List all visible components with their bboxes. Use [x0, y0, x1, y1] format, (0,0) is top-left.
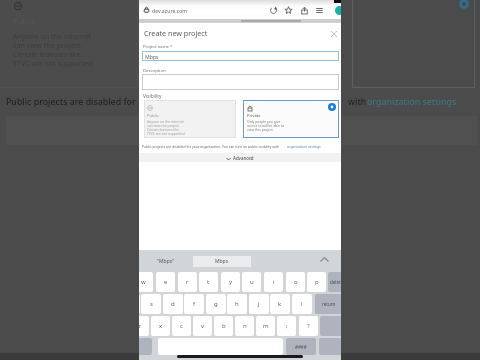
staticText: Visibility	[143, 93, 162, 100]
button[interactable]: return	[315, 294, 341, 314]
staticText: h	[235, 300, 239, 308]
button[interactable]: delete	[328, 272, 341, 292]
button[interactable]: o	[286, 272, 305, 292]
staticText: n	[243, 322, 247, 330]
staticText: ####	[295, 344, 307, 350]
button[interactable]: v	[193, 316, 212, 336]
staticText: e	[164, 278, 168, 286]
staticText: ;	[286, 322, 288, 330]
button[interactable]: i	[264, 272, 283, 292]
staticText: Advanced	[233, 155, 254, 161]
button[interactable]: y	[221, 272, 240, 292]
button[interactable]: k	[270, 294, 290, 314]
button[interactable]: e	[156, 272, 175, 292]
staticText: Only people you give access to will be a…	[247, 119, 285, 132]
button[interactable]: h	[227, 294, 247, 314]
staticText: v	[201, 322, 205, 330]
staticText: y	[229, 278, 233, 286]
button[interactable]: c	[172, 316, 191, 336]
staticText: delete	[330, 279, 341, 285]
button[interactable]: Advanced	[139, 153, 341, 162]
button[interactable]: p	[307, 272, 326, 292]
button[interactable]: a	[139, 294, 140, 314]
staticText: organization settings	[287, 144, 321, 149]
button[interactable]: Share	[299, 5, 310, 16]
staticText: Anyone on the internet can view the proj…	[147, 119, 186, 136]
button[interactable]: Mbps	[193, 256, 251, 267]
staticText: Create new project	[144, 28, 208, 38]
button[interactable]: f	[184, 294, 204, 314]
staticText: Public	[147, 113, 159, 119]
staticText: f	[193, 300, 196, 308]
staticText: r	[186, 278, 189, 286]
button[interactable]	[142, 74, 339, 90]
staticText: Anyone on the internet can view the proj…	[13, 31, 95, 68]
staticText: k	[278, 300, 282, 308]
staticText: j	[258, 300, 260, 308]
staticText: Description	[143, 68, 166, 74]
staticText: w	[141, 278, 146, 286]
staticText: m	[263, 322, 269, 330]
staticText: z	[139, 322, 141, 330]
staticText: "Mbps"	[157, 258, 175, 265]
staticText: Public projects are disabled for	[6, 96, 136, 108]
staticText: Private	[247, 113, 261, 119]
staticText: d	[171, 300, 175, 308]
button[interactable]: b	[214, 316, 233, 336]
button[interactable]: Menu	[314, 5, 325, 16]
staticText: Mbps	[145, 53, 159, 60]
staticText: ?	[307, 322, 310, 330]
button[interactable]: ?	[299, 316, 318, 336]
button[interactable]: d	[163, 294, 183, 314]
button[interactable]: u	[242, 272, 261, 292]
button[interactable]: Bookmark	[283, 5, 294, 16]
button[interactable]: j	[249, 294, 269, 314]
button[interactable]: z	[139, 316, 149, 336]
button[interactable]: Public	[144, 100, 236, 138]
staticText: organization settings	[367, 96, 457, 108]
button[interactable]: "Mbps"	[147, 256, 185, 267]
button[interactable]: t	[199, 272, 218, 292]
staticText: l	[301, 300, 303, 308]
staticText: c	[180, 322, 183, 330]
staticText: with	[348, 96, 367, 108]
staticText: s	[150, 300, 153, 308]
button[interactable]: s	[141, 294, 161, 314]
staticText: o	[294, 278, 298, 286]
button[interactable]: w	[139, 272, 153, 292]
button[interactable]: m	[256, 316, 275, 336]
staticText: i	[273, 278, 275, 286]
button[interactable]: Mbps	[142, 51, 339, 61]
button[interactable]: l	[292, 294, 312, 314]
staticText: t	[207, 278, 210, 286]
staticText: dev.azure.com	[152, 7, 188, 14]
staticText: x	[159, 322, 163, 330]
button[interactable]: r	[178, 272, 197, 292]
staticText: return	[322, 301, 336, 307]
staticText: Mbps	[215, 258, 229, 265]
staticText: p	[315, 278, 319, 286]
staticText: g	[214, 300, 218, 308]
button[interactable]: Numbers	[286, 338, 316, 355]
button[interactable]: Close	[329, 29, 338, 38]
button[interactable]: Reload	[268, 5, 279, 16]
button[interactable]: ;	[277, 316, 296, 336]
button[interactable]: Private	[243, 100, 339, 138]
staticText: Project name *	[143, 44, 173, 50]
button[interactable]: g	[206, 294, 226, 314]
staticText: Public projects are disabled for your or…	[142, 144, 280, 149]
button[interactable]: Account	[335, 6, 341, 15]
staticText: b	[222, 322, 226, 330]
staticText: u	[250, 278, 254, 286]
button[interactable]: n	[235, 316, 254, 336]
button[interactable]: x	[151, 316, 170, 336]
button[interactable]: Hide keyboard	[319, 255, 330, 266]
